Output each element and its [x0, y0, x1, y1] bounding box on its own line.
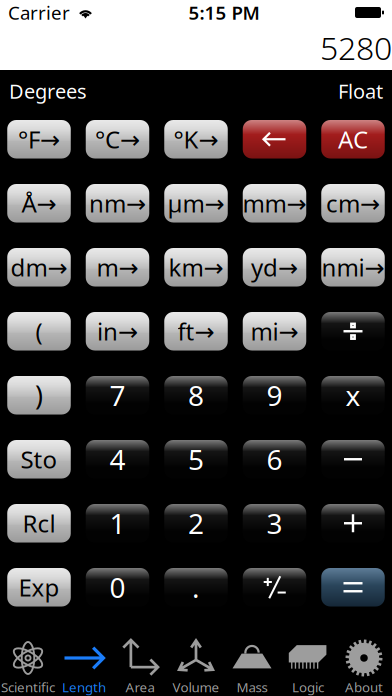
button[interactable]: [321, 312, 385, 350]
staticText: 1: [109, 505, 125, 542]
button[interactable]: 8: [164, 376, 228, 414]
staticText: x: [345, 377, 360, 414]
staticText: °K→: [173, 123, 218, 155]
button[interactable]: Scientific: [0, 630, 56, 696]
staticText: °F→: [18, 123, 60, 155]
staticText: µm→: [167, 187, 224, 219]
button[interactable]: [243, 120, 306, 158]
button[interactable]: mi→: [243, 312, 306, 350]
staticText: Float: [338, 78, 383, 104]
staticText: mi→: [250, 315, 298, 347]
button[interactable]: in→: [86, 312, 149, 350]
button[interactable]: mm→: [243, 184, 306, 222]
staticText: Mass: [236, 678, 267, 696]
button[interactable]: .: [164, 568, 228, 606]
button[interactable]: km→: [164, 248, 228, 286]
staticText: 8: [188, 377, 204, 414]
staticText: nmi→: [321, 251, 384, 283]
staticText: 9: [266, 377, 282, 414]
staticText: Rcl: [22, 507, 55, 539]
staticText: 4: [109, 441, 125, 478]
button[interactable]: nm→: [86, 184, 149, 222]
staticText: 0: [109, 569, 125, 606]
button[interactable]: Degrees: [9, 78, 87, 104]
staticText: About: [345, 678, 383, 696]
staticText: Scientific: [1, 678, 55, 696]
staticText: in→: [97, 315, 138, 347]
staticText: Exp: [18, 571, 59, 603]
staticText: m→: [96, 251, 138, 283]
button[interactable]: dm→: [7, 248, 71, 286]
button[interactable]: °F→: [7, 120, 71, 158]
button[interactable]: AC: [321, 120, 385, 158]
button[interactable]: °K→: [164, 120, 228, 158]
staticText: (: [35, 315, 42, 347]
button[interactable]: Volume: [168, 630, 224, 696]
staticText: km→: [168, 251, 223, 283]
staticText: 5:15 PM: [188, 0, 259, 25]
button[interactable]: nmi→: [321, 248, 385, 286]
staticText: Carrier: [8, 0, 70, 25]
button[interactable]: x: [321, 376, 385, 414]
staticText: Length: [62, 678, 106, 696]
button[interactable]: Exp: [7, 568, 71, 606]
staticText: mm→: [242, 187, 306, 219]
button[interactable]: Float: [338, 78, 383, 104]
button[interactable]: yd→: [243, 248, 306, 286]
staticText: 5: [188, 441, 204, 478]
button[interactable]: [243, 568, 306, 606]
button[interactable]: 0: [86, 568, 149, 606]
button[interactable]: Logic: [280, 630, 336, 696]
button[interactable]: Å→: [7, 184, 71, 222]
button[interactable]: [321, 568, 385, 606]
button[interactable]: Rcl: [7, 504, 71, 542]
staticText: AC: [338, 123, 368, 155]
staticText: Å→: [21, 187, 56, 219]
staticText: ft→: [177, 315, 214, 347]
button[interactable]: ft→: [164, 312, 228, 350]
staticText: ): [35, 377, 43, 413]
staticText: 6: [266, 441, 282, 478]
button[interactable]: µm→: [164, 184, 228, 222]
button[interactable]: Mass: [224, 630, 280, 696]
button[interactable]: 7: [86, 376, 149, 414]
button[interactable]: [321, 440, 385, 478]
button[interactable]: [321, 504, 385, 542]
staticText: 2: [188, 505, 204, 542]
button[interactable]: m→: [86, 248, 149, 286]
staticText: yd→: [251, 251, 298, 283]
staticText: Sto: [20, 443, 57, 475]
button[interactable]: ): [7, 376, 71, 414]
button[interactable]: Sto: [7, 440, 71, 478]
button[interactable]: Length: [56, 630, 112, 696]
staticText: Volume: [172, 678, 219, 696]
button[interactable]: About: [336, 630, 392, 696]
button[interactable]: (: [7, 312, 71, 350]
button[interactable]: 1: [86, 504, 149, 542]
staticText: Area: [125, 678, 154, 696]
button[interactable]: °C→: [86, 120, 149, 158]
button[interactable]: 3: [243, 504, 306, 542]
staticText: nm→: [89, 187, 146, 219]
button[interactable]: cm→: [321, 184, 385, 222]
staticText: 3: [266, 505, 282, 542]
staticText: 5280: [320, 26, 392, 69]
button[interactable]: 4: [86, 440, 149, 478]
button[interactable]: Area: [112, 630, 168, 696]
staticText: cm→: [326, 187, 380, 219]
staticText: 7: [109, 377, 125, 414]
staticText: .: [192, 569, 200, 606]
button[interactable]: 2: [164, 504, 228, 542]
button[interactable]: 9: [243, 376, 306, 414]
staticText: dm→: [10, 251, 67, 283]
button[interactable]: 5: [164, 440, 228, 478]
button[interactable]: 6: [243, 440, 306, 478]
staticText: Logic: [292, 678, 324, 696]
staticText: °C→: [95, 123, 140, 155]
staticText: Degrees: [9, 78, 87, 104]
